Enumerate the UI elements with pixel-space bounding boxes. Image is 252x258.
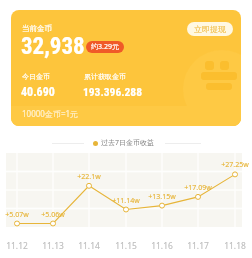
staticText: 11.16 xyxy=(151,240,173,252)
staticText: 约3.29元 xyxy=(91,42,119,52)
staticText: 今日金币 xyxy=(22,72,50,81)
staticText: 立即提现 xyxy=(194,24,226,34)
staticText: 11.17 xyxy=(187,240,209,252)
staticText: +5.06w xyxy=(41,210,65,220)
staticText: 11.15 xyxy=(115,240,137,252)
staticText: +22.1w xyxy=(77,172,101,182)
staticText: 11.13 xyxy=(42,240,64,252)
staticText: 32,938 xyxy=(21,33,85,60)
staticText: 11.12 xyxy=(6,240,28,252)
staticText: 40.690 xyxy=(21,85,55,99)
staticText: +27.25w xyxy=(221,160,249,170)
staticText: 193.396.288 xyxy=(83,85,142,98)
staticText: 累计获取金币 xyxy=(84,72,126,81)
staticText: +5.07w xyxy=(5,210,29,220)
staticText: 当前金币 xyxy=(22,24,52,33)
staticText: 10000金币=1元 xyxy=(22,108,79,119)
staticText: +13.15w xyxy=(148,192,176,202)
staticText: 过去7日金币收益 xyxy=(101,138,155,148)
staticText: +11.14w xyxy=(112,196,140,206)
staticText: +17.09w xyxy=(184,183,212,193)
staticText: 11.18 xyxy=(224,240,246,252)
staticText: 11.14 xyxy=(78,240,100,252)
button[interactable]: 立即提现 xyxy=(187,22,233,36)
